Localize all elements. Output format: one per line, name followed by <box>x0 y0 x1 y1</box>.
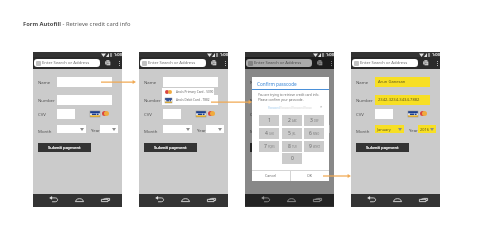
button[interactable] <box>269 95 324 105</box>
button[interactable]: Back <box>48 195 58 204</box>
button[interactable]: 2342-3234-3434-7882 <box>375 95 430 105</box>
button[interactable]: Recent apps <box>418 195 428 204</box>
staticText: Enter Search or Address <box>360 60 408 66</box>
button[interactable] <box>269 109 287 119</box>
button[interactable]: Enter Search or Address <box>34 59 100 67</box>
staticText: 1 <box>268 117 271 124</box>
button[interactable] <box>206 125 224 133</box>
button[interactable]: Tabs <box>104 59 112 67</box>
staticText: Month <box>144 128 158 134</box>
staticText: January <box>377 127 391 132</box>
button[interactable]: 1 <box>259 115 279 126</box>
button[interactable] <box>57 125 86 133</box>
staticText: 4 <box>265 130 268 137</box>
button[interactable]: 6 <box>304 128 324 139</box>
button[interactable]: Home <box>392 195 402 204</box>
button[interactable]: 7 <box>259 141 279 152</box>
staticText: CVV <box>250 111 258 117</box>
button[interactable]: Recent apps <box>206 195 216 204</box>
staticText: 1:00 <box>220 52 228 57</box>
button[interactable]: 8 <box>282 141 302 152</box>
button[interactable]: Home <box>180 195 190 204</box>
staticText: 9 <box>309 143 312 150</box>
button[interactable]: Back <box>366 195 376 204</box>
staticText: 2 <box>288 117 291 124</box>
button[interactable]: Ana's Primary Card - 5090 <box>162 88 214 96</box>
button[interactable]: Recent apps <box>100 195 110 204</box>
staticText: 8 <box>288 143 291 150</box>
button[interactable] <box>57 77 112 87</box>
staticText: Month <box>38 128 52 134</box>
button[interactable]: Home <box>286 195 296 204</box>
staticText: Year <box>303 127 312 133</box>
staticText: Ana's Debit Card - 7882 <box>176 98 210 102</box>
button[interactable]: Tabs <box>316 59 324 67</box>
button[interactable]: Cancel <box>252 170 290 181</box>
button[interactable]: 9 <box>304 141 324 152</box>
button[interactable]: Ana's Debit Card - 7882 <box>162 96 214 104</box>
button[interactable]: Submit payment <box>144 143 197 152</box>
staticText: Name <box>144 79 157 85</box>
staticText: ABC <box>292 119 297 123</box>
staticText: Submit payment <box>48 145 81 151</box>
staticText: Arun Ganesan <box>378 79 406 85</box>
staticText: Year <box>409 127 418 133</box>
button[interactable]: Tabs <box>422 59 430 67</box>
staticText: CVV <box>144 111 152 117</box>
button[interactable]: Arun Ganesan <box>375 77 430 87</box>
staticText: Submit payment <box>366 145 399 151</box>
staticText: Year <box>197 127 206 133</box>
button[interactable]: Back <box>260 195 270 204</box>
button[interactable]: 0 <box>282 153 302 164</box>
button[interactable]: More options <box>328 59 334 68</box>
staticText: CVV <box>356 111 364 117</box>
button[interactable]: 5 <box>282 128 302 139</box>
button[interactable]: Enter Search or Address <box>140 59 206 67</box>
button[interactable] <box>163 95 218 105</box>
button[interactable]: Recent apps <box>312 195 322 204</box>
button[interactable]: Submit payment <box>250 143 303 152</box>
button[interactable]: More options <box>222 59 228 68</box>
button[interactable]: Enter Search or Address <box>352 59 418 67</box>
button[interactable] <box>269 77 324 87</box>
button[interactable] <box>163 125 192 133</box>
staticText: 2342-3234-3434-7882 <box>378 97 420 103</box>
button[interactable] <box>269 125 298 133</box>
staticText: TUV <box>292 145 297 149</box>
staticText: Cancel <box>265 173 277 178</box>
button[interactable]: 2 <box>282 115 302 126</box>
staticText: Form Autofill <box>23 20 61 28</box>
button[interactable]: 3 <box>304 115 324 126</box>
button[interactable] <box>312 125 330 133</box>
staticText: 5 <box>288 130 291 137</box>
button[interactable] <box>100 125 118 133</box>
button[interactable]: Submit payment <box>356 143 409 152</box>
staticText: Number <box>38 97 55 103</box>
button[interactable]: January <box>375 125 404 133</box>
staticText: Password <box>304 106 312 110</box>
staticText: Submit payment <box>154 145 187 151</box>
button[interactable]: 4 <box>259 128 279 139</box>
button[interactable]: Clear <box>318 103 324 109</box>
staticText: You are trying to retrieve credit card i… <box>258 93 320 97</box>
button[interactable]: Tabs <box>210 59 218 67</box>
button[interactable]: Back <box>154 195 164 204</box>
staticText: 3 <box>310 117 313 124</box>
staticText: 1:00 <box>326 52 334 57</box>
staticText: Month <box>250 128 264 134</box>
button[interactable]: Submit payment <box>38 143 91 152</box>
button[interactable]: OK <box>291 170 329 181</box>
button[interactable]: More options <box>434 59 440 68</box>
button[interactable]: Home <box>74 195 84 204</box>
button[interactable]: Enter Search or Address <box>246 59 312 67</box>
button[interactable]: 2016 <box>418 125 436 133</box>
staticText: × <box>320 104 323 109</box>
staticText: Password <box>280 106 292 110</box>
button[interactable]: More options <box>116 59 122 68</box>
staticText: DEF <box>314 119 319 123</box>
